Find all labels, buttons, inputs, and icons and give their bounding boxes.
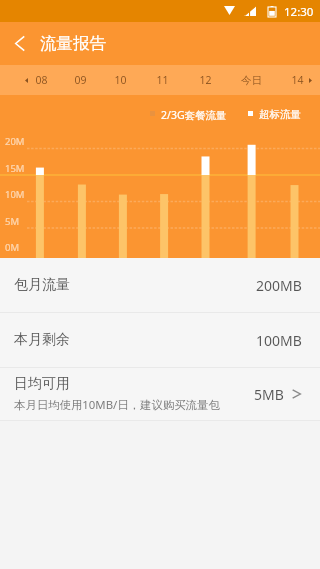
staticText: 2/3G套餐流量 bbox=[161, 108, 227, 122]
button[interactable]: Next day bbox=[302, 65, 318, 95]
staticText: 20M bbox=[5, 135, 25, 148]
staticText: 12 bbox=[199, 73, 212, 87]
staticText: 5MB bbox=[254, 385, 284, 404]
staticText: 10 bbox=[114, 73, 127, 87]
button[interactable]: 09 bbox=[60, 65, 100, 95]
button[interactable]: 14 bbox=[277, 65, 317, 95]
staticText: 10M bbox=[5, 188, 25, 201]
staticText: 超标流量 bbox=[259, 108, 301, 121]
button[interactable]: 日均可用 bbox=[0, 368, 320, 420]
staticText: 5M bbox=[5, 215, 20, 228]
staticText: 本月日均使用10MB/日，建议购买流量包 bbox=[14, 397, 220, 413]
button[interactable]: 12 bbox=[185, 65, 225, 95]
staticText: 日均可用 bbox=[14, 375, 70, 393]
staticText: 15M bbox=[5, 162, 25, 175]
button[interactable]: 包月流量 bbox=[0, 258, 320, 312]
staticText: 包月流量 bbox=[14, 276, 70, 294]
button[interactable]: 今日 bbox=[231, 65, 271, 95]
button[interactable]: Back bbox=[0, 22, 40, 65]
button[interactable]: 本月剩余 bbox=[0, 313, 320, 367]
button[interactable]: Previous day bbox=[18, 65, 34, 95]
staticText: 0M bbox=[5, 241, 20, 254]
button[interactable]: 08 bbox=[21, 65, 61, 95]
staticText: 09 bbox=[74, 73, 87, 87]
button[interactable]: 11 bbox=[142, 65, 182, 95]
staticText: 11 bbox=[156, 73, 169, 87]
staticText: 12:30 bbox=[284, 4, 314, 20]
staticText: 流量报告 bbox=[40, 33, 106, 54]
button[interactable]: 10 bbox=[100, 65, 140, 95]
staticText: 100MB bbox=[256, 331, 302, 350]
staticText: 08 bbox=[35, 73, 48, 87]
staticText: 今日 bbox=[241, 74, 262, 87]
staticText: 14 bbox=[291, 73, 304, 87]
staticText: 本月剩余 bbox=[14, 331, 70, 349]
staticText: 200MB bbox=[256, 276, 302, 295]
